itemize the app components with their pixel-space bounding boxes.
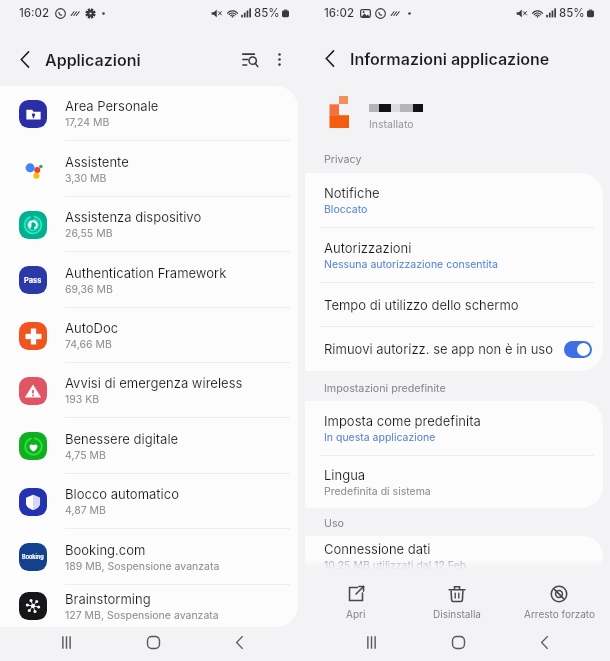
button[interactable]: Recents [328, 627, 415, 658]
staticText: 85% [254, 6, 280, 20]
staticText: 17,24 MB [65, 116, 110, 129]
button[interactable]: Search [236, 45, 264, 73]
staticText: Installato [369, 118, 414, 131]
staticText: In questa applicazione [324, 431, 436, 444]
staticText: Impostazioni predefinite [324, 382, 446, 395]
staticText: Uso [324, 517, 345, 530]
staticText: 85% [559, 6, 585, 20]
button[interactable]: Notifiche [305, 173, 603, 228]
staticText: 16:02 [324, 6, 355, 20]
button[interactable]: Avvisi di emergenza wireless [0, 363, 298, 418]
staticText: Area Personale [65, 98, 159, 114]
staticText: 10,25 MB utilizzati dal 12 Feb [324, 559, 467, 572]
button[interactable]: Lingua [305, 456, 603, 508]
button[interactable]: Brainstorming [0, 585, 298, 627]
staticText: Disinstalla [433, 608, 481, 620]
button[interactable] [564, 341, 592, 358]
staticText: Booking.com [65, 542, 146, 558]
button[interactable]: Blocco automatico [0, 474, 298, 529]
button[interactable]: Connessione dati [305, 536, 603, 577]
button[interactable]: Imposta come predefinita [305, 401, 603, 456]
staticText: Brainstorming [65, 591, 151, 607]
staticText: 127 MB, Sospensione avanzata [65, 609, 219, 622]
button[interactable]: More options [265, 45, 293, 73]
staticText: Avvisi di emergenza wireless [65, 375, 243, 391]
staticText: Predefinita di sistema [324, 485, 431, 498]
staticText: 4,87 MB [65, 504, 106, 517]
button[interactable]: Back [11, 45, 39, 73]
staticText: Bloccato [324, 203, 368, 216]
staticText: 4,75 MB [65, 449, 106, 462]
staticText: 189 MB, Sospensione avanzata [65, 560, 220, 573]
staticText: 26,55 MB [65, 227, 113, 240]
staticText: Authentication Framework [65, 265, 227, 281]
staticText: 193 KB [65, 393, 100, 406]
button[interactable]: Arresto forzato [508, 577, 610, 627]
button[interactable]: Assistente [0, 141, 298, 197]
staticText: Tempo di utilizzo dello schermo [324, 297, 519, 313]
staticText: Autorizzazioni [324, 240, 412, 256]
button[interactable]: Pass [0, 252, 298, 308]
staticText: Benessere digitale [65, 431, 179, 447]
button[interactable]: Autorizzazioni [305, 228, 603, 283]
button[interactable]: Disinstalla [406, 577, 508, 627]
staticText: 16:02 [19, 6, 50, 20]
staticText: Nessuna autorizzazione consentita [324, 258, 498, 271]
button[interactable]: Apri [305, 577, 406, 627]
staticText: Connessione dati [324, 541, 431, 557]
staticText: Apri [346, 608, 366, 620]
staticText: Informazioni applicazione [350, 49, 550, 68]
staticText: Assistente [65, 154, 129, 170]
staticText: Rimuovi autorizz. se app non è in uso [324, 341, 554, 357]
staticText: Lingua [324, 467, 366, 483]
staticText: Privacy [324, 153, 362, 166]
button[interactable]: Tempo di utilizzo dello schermo [305, 283, 603, 327]
staticText: 3,30 MB [65, 172, 107, 185]
staticText: 69,36 MB [65, 283, 113, 296]
staticText: AutoDoc [65, 320, 119, 336]
staticText: Applicazioni [45, 50, 141, 69]
staticText: Notifiche [324, 185, 380, 201]
staticText: Imposta come predefinita [324, 413, 481, 429]
button[interactable]: Home [110, 627, 196, 658]
button[interactable]: Rimuovi autorizz. se app non è in uso [305, 327, 603, 371]
button[interactable]: Benessere digitale [0, 418, 298, 474]
button[interactable]: Area Personale [0, 86, 298, 141]
staticText: Pass [24, 276, 42, 285]
staticText: Booking [22, 554, 44, 561]
button[interactable]: Assistenza dispositivo [0, 197, 298, 252]
button[interactable]: AutoDoc [0, 308, 298, 363]
button[interactable]: Back [316, 44, 344, 72]
staticText: 74,66 MB [65, 338, 112, 351]
button[interactable]: Back [501, 627, 587, 658]
staticText: Blocco automatico [65, 486, 179, 502]
button[interactable]: Booking [0, 529, 298, 585]
button[interactable]: Back [196, 627, 282, 658]
staticText: Assistenza dispositivo [65, 209, 202, 225]
staticText: Arresto forzato [524, 608, 595, 620]
button[interactable]: Home [415, 627, 501, 658]
button[interactable]: Recents [23, 627, 110, 658]
